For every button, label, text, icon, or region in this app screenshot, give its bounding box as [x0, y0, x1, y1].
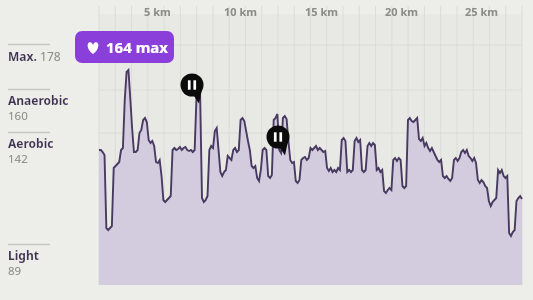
staticText: Aerobic — [8, 135, 54, 151]
button[interactable]: Anaerobic — [8, 89, 100, 125]
button[interactable]: Aerobic — [8, 132, 100, 168]
staticText: 25 km — [465, 4, 498, 19]
staticText: Max. — [8, 48, 37, 64]
staticText: Light — [8, 247, 39, 263]
button[interactable]: Max. — [8, 44, 100, 80]
button[interactable]: Light — [8, 244, 100, 280]
staticText: 89 — [8, 263, 22, 279]
button[interactable]: Heart rate — [75, 31, 174, 63]
other: Heart rate — [86, 41, 100, 54]
staticText: 160 — [8, 108, 28, 124]
staticText: 5 km — [144, 4, 171, 19]
staticText: 142 — [8, 151, 28, 167]
staticText: 164 max — [106, 37, 168, 57]
staticText: 15 km — [305, 4, 338, 19]
staticText: 20 km — [385, 4, 418, 19]
staticText: 178 — [37, 48, 61, 64]
staticText: Anaerobic — [8, 92, 69, 108]
staticText: 10 km — [224, 4, 257, 19]
